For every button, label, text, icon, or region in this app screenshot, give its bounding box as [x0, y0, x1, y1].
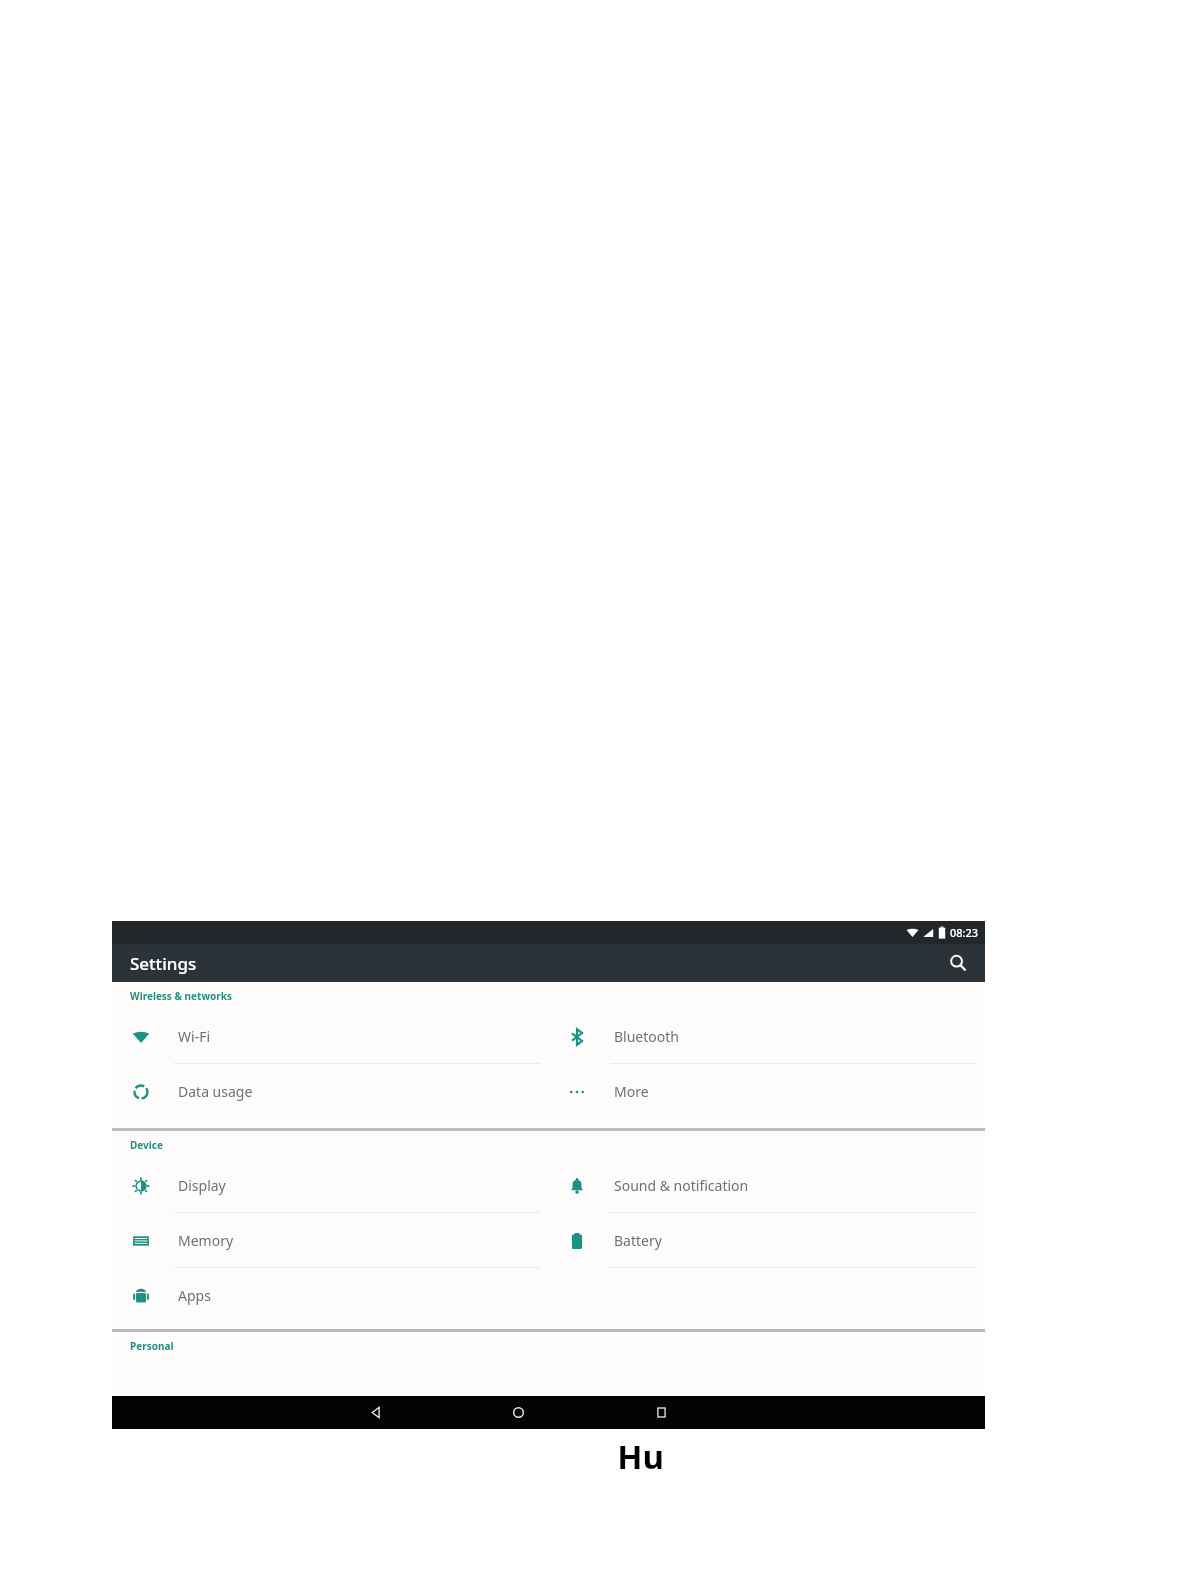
- staticText: Wi-Fi: [178, 1027, 211, 1046]
- staticText: Data usage: [178, 1082, 253, 1101]
- staticText: More: [614, 1082, 649, 1101]
- staticText: Battery: [614, 1231, 662, 1250]
- staticText: Bluetooth: [614, 1027, 679, 1046]
- staticText: Device: [130, 1138, 163, 1152]
- button[interactable]: Bluetooth: [548, 1009, 985, 1064]
- staticText: 08:23: [950, 925, 979, 940]
- staticText: Settings: [130, 952, 197, 975]
- button[interactable]: Wi-Fi: [112, 1009, 548, 1064]
- button[interactable]: Display: [112, 1158, 548, 1213]
- staticText: Hu: [617, 1434, 664, 1479]
- staticText: Display: [178, 1176, 226, 1195]
- staticText: Apps: [178, 1286, 211, 1305]
- button[interactable]: Recents: [639, 1396, 683, 1429]
- button[interactable]: More: [548, 1064, 985, 1119]
- button[interactable]: Apps: [112, 1268, 548, 1323]
- staticText: Memory: [178, 1231, 234, 1250]
- button[interactable]: Search: [941, 946, 975, 980]
- button[interactable]: Back: [353, 1396, 397, 1429]
- staticText: Wireless & networks: [130, 989, 232, 1003]
- button[interactable]: Data usage: [112, 1064, 548, 1119]
- button[interactable]: Sound & notification: [548, 1158, 985, 1213]
- staticText: Personal: [130, 1339, 174, 1353]
- button[interactable]: Battery: [548, 1213, 985, 1268]
- button[interactable]: Home: [496, 1396, 540, 1429]
- staticText: Sound & notification: [614, 1176, 749, 1195]
- button[interactable]: Memory: [112, 1213, 548, 1268]
